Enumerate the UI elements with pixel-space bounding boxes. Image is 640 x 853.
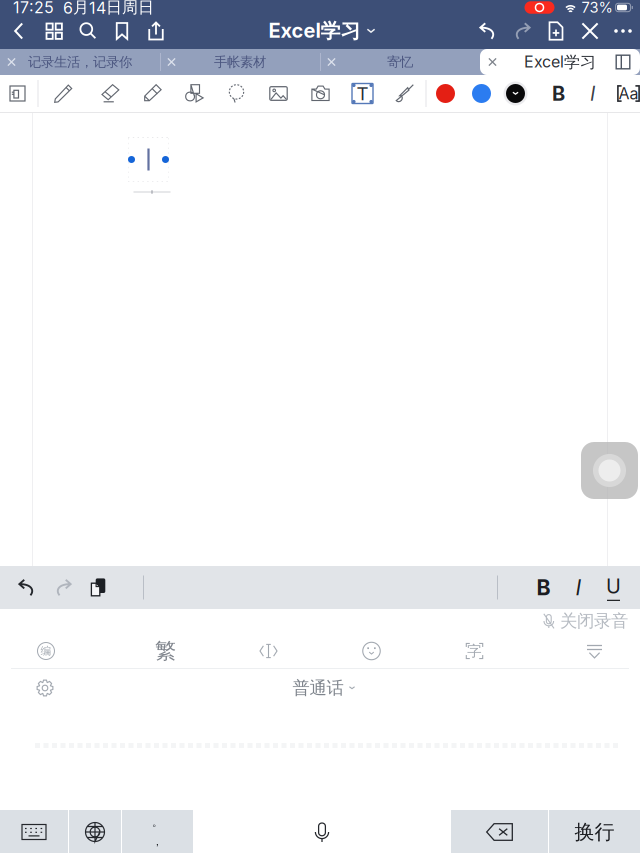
staticText: 字: [467, 642, 482, 660]
button[interactable]: Search: [71, 16, 105, 46]
button[interactable]: 寄忆: [320, 49, 480, 75]
button[interactable]: Page thumbnails: [37, 16, 71, 46]
button[interactable]: Excel学习: [268, 16, 375, 46]
staticText: U: [606, 574, 621, 598]
button[interactable]: 记录生活，记录你: [0, 49, 160, 75]
button[interactable]: Dictation: [193, 810, 451, 853]
staticText: 6月14日周日: [63, 0, 154, 18]
button[interactable]: Bookmark: [105, 16, 139, 46]
staticText: B: [536, 575, 550, 600]
staticText: 手帐素材: [214, 54, 266, 70]
button[interactable]: Text box: [341, 75, 383, 112]
button[interactable]: AssistiveTouch: [581, 442, 638, 499]
button[interactable]: Close: [573, 16, 607, 46]
staticText: 。: [152, 816, 163, 829]
button[interactable]: Punctuation: [122, 810, 193, 853]
staticText: 17:25: [13, 0, 54, 17]
button[interactable]: Hand tool: [0, 75, 37, 112]
button[interactable]: Back: [1, 16, 37, 46]
staticText: Aa: [618, 84, 638, 103]
staticText: T: [356, 82, 368, 105]
button[interactable]: Edit phrases: [11, 633, 114, 669]
button[interactable]: Delete: [451, 810, 548, 853]
button[interactable]: I: [561, 569, 596, 605]
button[interactable]: Emoji: [320, 633, 423, 669]
button[interactable]: Excel学习: [480, 49, 640, 75]
button[interactable]: Keyboard settings: [0, 670, 90, 706]
staticText: 换行: [574, 819, 614, 845]
button[interactable]: Undo: [9, 569, 45, 605]
button[interactable]: Eraser: [88, 75, 131, 112]
button[interactable]: Lasso: [215, 75, 257, 112]
button[interactable]: 普通话: [292, 670, 355, 706]
button[interactable]: Undo: [471, 16, 505, 46]
button[interactable]: Red: [426, 75, 464, 112]
button[interactable]: New page: [539, 16, 573, 46]
button[interactable]: Redo: [45, 569, 81, 605]
button[interactable]: Share: [139, 16, 173, 46]
staticText: 编: [40, 644, 51, 658]
button[interactable]: Camera: [299, 75, 341, 112]
button[interactable]: Shapes: [173, 75, 215, 112]
button[interactable]: Next keyboard: [69, 810, 121, 853]
staticText: B: [552, 81, 565, 106]
button[interactable]: Text style: [608, 75, 640, 112]
staticText: 繁: [155, 638, 176, 664]
staticText: Excel学习: [268, 18, 360, 44]
button[interactable]: B: [540, 75, 576, 112]
button[interactable]: Move cursor: [217, 633, 320, 669]
button[interactable]: Hide keyboard: [526, 633, 629, 669]
button[interactable]: More: [607, 16, 639, 46]
staticText: 记录生活，记录你: [28, 54, 132, 70]
button[interactable]: More colours: [498, 75, 532, 112]
staticText: Excel学习: [524, 52, 596, 72]
button[interactable]: Highlighter: [131, 75, 173, 112]
staticText: 寄忆: [387, 54, 413, 70]
staticText: I: [590, 81, 595, 106]
staticText: 关闭录音: [560, 610, 628, 632]
staticText: I: [575, 575, 581, 600]
button[interactable]: B: [526, 569, 561, 605]
button[interactable]: Blue: [464, 75, 498, 112]
staticText: 73%: [581, 0, 612, 16]
staticText: 普通话: [292, 677, 343, 699]
button[interactable]: 换行: [549, 810, 640, 853]
button[interactable]: 关闭录音: [543, 610, 628, 632]
button[interactable]: Traditional Chinese: [114, 633, 217, 669]
button[interactable]: 手帐素材: [160, 49, 320, 75]
button[interactable]: Insert image: [257, 75, 299, 112]
button[interactable]: Redo: [505, 16, 539, 46]
button[interactable]: Pen: [38, 75, 88, 112]
button[interactable]: Keyboard type: [0, 810, 68, 853]
button[interactable]: Sidebar: [606, 49, 640, 75]
button[interactable]: Handwriting: [423, 633, 526, 669]
button[interactable]: U: [596, 569, 631, 605]
button[interactable]: Screen recording: [524, 1, 554, 14]
button[interactable]: I: [576, 75, 608, 112]
button[interactable]: Paste: [81, 569, 115, 605]
button[interactable]: Laser pointer: [383, 75, 425, 112]
staticText: ，: [152, 835, 163, 848]
